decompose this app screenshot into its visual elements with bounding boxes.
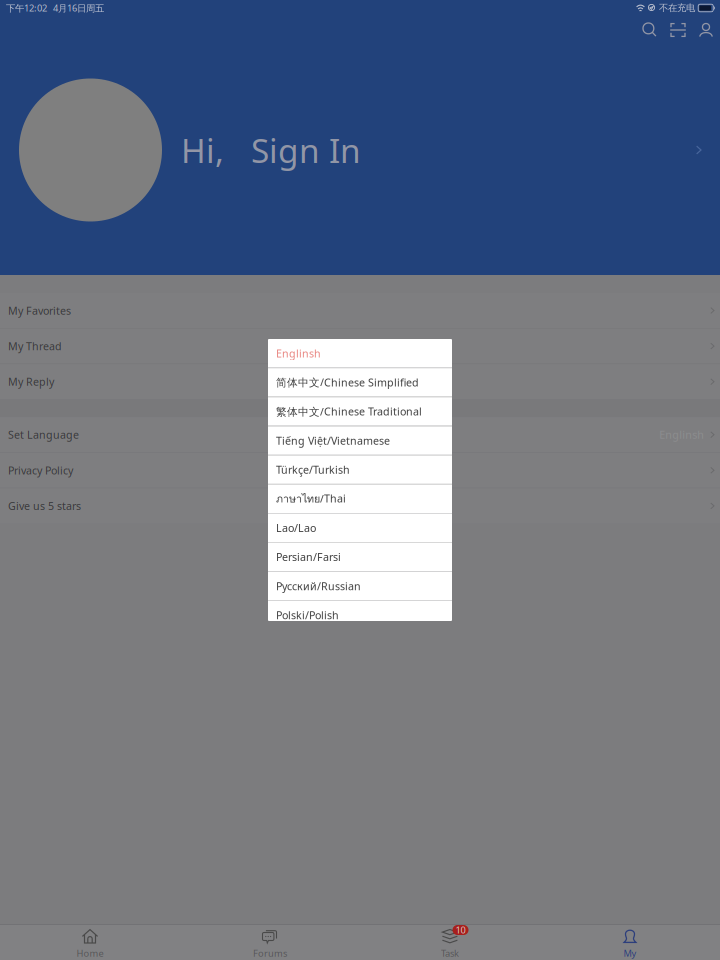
staticText: Task [441, 947, 459, 959]
staticText: 10 [455, 924, 465, 936]
staticText: Polski/Polish [276, 608, 339, 622]
staticText: Lao/Lao [276, 521, 316, 535]
button[interactable]: My Reply [0, 364, 720, 399]
staticText: Türkçe/Turkish [276, 463, 350, 477]
staticText: 不在充电 [659, 2, 695, 14]
button[interactable]: 繁体中文/Chinese Traditional [268, 397, 452, 426]
staticText: Give us 5 stars [8, 499, 81, 513]
button[interactable]: Lao/Lao [268, 514, 452, 542]
button[interactable]: Hi, Sign In [0, 44, 720, 256]
button[interactable]: ภาษาไทย/Thai [268, 484, 452, 513]
staticText: Tiếng Việt/Vietnamese [276, 433, 390, 448]
staticText: Persian/Farsi [276, 550, 341, 564]
staticText: My [623, 947, 636, 959]
button[interactable]: Forums [180, 925, 360, 960]
button[interactable]: My Thread [0, 329, 720, 364]
staticText: Privacy Policy [8, 463, 73, 477]
staticText: Set Language [8, 428, 79, 442]
staticText: My Favorites [8, 303, 71, 318]
button[interactable]: Give us 5 stars [0, 488, 720, 523]
button[interactable]: Set Language [0, 417, 720, 452]
button[interactable]: My Favorites [0, 293, 720, 328]
staticText: My Thread [8, 339, 62, 353]
staticText: Русский/Russian [276, 579, 361, 593]
button[interactable]: Polski/Polish [268, 601, 452, 629]
staticText: Forums [253, 947, 287, 959]
button[interactable]: Scan [664, 17, 692, 43]
staticText: ภาษาไทย/Thai [276, 490, 346, 507]
button[interactable]: Tiếng Việt/Vietnamese [268, 426, 452, 455]
button[interactable]: Türkçe/Turkish [268, 455, 452, 484]
button[interactable]: My [540, 925, 720, 960]
staticText: Englinsh [659, 428, 704, 442]
staticText: 简体中文/Chinese Simplified [276, 375, 419, 389]
staticText: My Reply [8, 375, 54, 389]
button[interactable]: Search [636, 17, 664, 43]
staticText: 下午12:02 4月16日周五 [6, 2, 104, 14]
button[interactable]: 10 [360, 925, 540, 960]
button[interactable]: Home [0, 925, 180, 960]
staticText: Home [76, 947, 103, 959]
button[interactable]: 简体中文/Chinese Simplified [268, 368, 452, 397]
staticText: 繁体中文/Chinese Traditional [276, 404, 422, 419]
button[interactable]: Englinsh [268, 339, 452, 367]
button[interactable]: Account [692, 17, 720, 43]
staticText: Englinsh [276, 346, 321, 360]
button[interactable]: Persian/Farsi [268, 543, 452, 571]
button[interactable]: Русский/Russian [268, 572, 452, 600]
button[interactable]: Privacy Policy [0, 453, 720, 488]
staticText: Hi, Sign In [181, 128, 361, 172]
